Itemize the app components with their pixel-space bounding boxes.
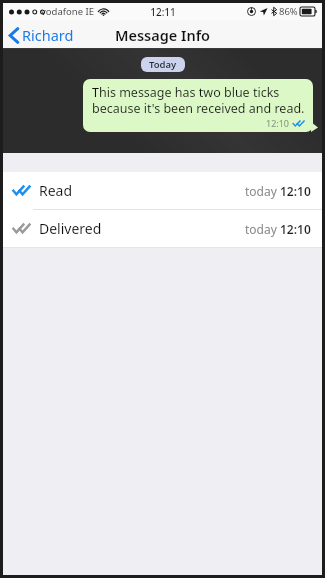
staticText: This message has two blue ticks because … (92, 84, 305, 116)
staticText: today (245, 183, 280, 199)
other: Double check mark (13, 185, 31, 196)
staticText: 12:10 (266, 117, 290, 129)
staticText: 86% (279, 5, 298, 18)
staticText: 12:10 (280, 183, 311, 199)
staticText: 12:10 (280, 221, 311, 237)
staticText: vodafone IE (41, 5, 94, 18)
staticText: 12:11 (150, 5, 176, 19)
staticText: Read (39, 181, 73, 200)
staticText: Today (149, 58, 177, 71)
button[interactable]: Double check mark (3, 172, 322, 209)
button[interactable]: Richard (3, 21, 82, 49)
staticText: Delivered (39, 219, 102, 238)
staticText: Richard (22, 25, 74, 45)
other: Double check mark (13, 223, 31, 234)
staticText: today (245, 221, 280, 237)
staticText: Message Info (115, 25, 211, 45)
button[interactable]: Double check mark (3, 210, 322, 247)
other: Double check mark (293, 120, 305, 127)
